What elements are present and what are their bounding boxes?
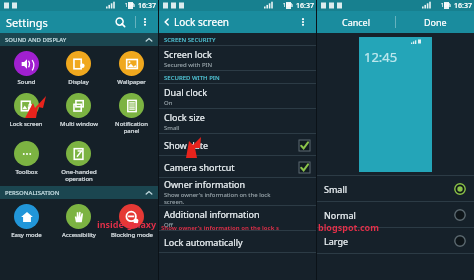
button[interactable]: Cancel — [317, 11, 395, 33]
other: Collapse — [145, 189, 153, 197]
button[interactable]: Show date — [159, 134, 316, 156]
other: Collapse — [145, 36, 153, 44]
staticText: Easy mode — [11, 231, 42, 239]
staticText: 16% — [441, 2, 451, 9]
button[interactable]: Dual clock — [159, 84, 316, 109]
button[interactable]: Notification panel — [105, 92, 158, 136]
staticText: Dual clock — [164, 86, 208, 98]
staticText: Large — [324, 235, 349, 247]
staticText: Show owner's information on the lock scr… — [164, 191, 271, 206]
staticText: inside-galaxy — [97, 218, 157, 230]
staticText: 16:37 — [454, 1, 472, 11]
staticText: Additional information — [164, 208, 260, 220]
staticText: Small — [164, 124, 180, 132]
staticText: Normal — [324, 209, 356, 221]
staticText: PERSONALISATION — [5, 189, 60, 197]
staticText: Display — [68, 78, 89, 86]
button[interactable]: Easy mode — [0, 203, 52, 240]
button[interactable]: More options — [295, 14, 311, 30]
staticText: Wallpaper — [117, 78, 146, 86]
button[interactable]: Additional information — [159, 206, 316, 231]
button[interactable]: Multi window — [52, 92, 105, 129]
staticText: Show date — [164, 139, 209, 151]
button[interactable]: Owner information — [159, 178, 316, 206]
staticText: One-handed operation — [61, 168, 97, 183]
staticText: Show owner's information on the lock s — [161, 224, 279, 232]
staticText: 16% — [125, 2, 135, 9]
button[interactable]: SOUND AND DISPLAY — [0, 33, 158, 46]
staticText: 16:37 — [296, 1, 314, 11]
other: Small option — [454, 183, 466, 195]
other: Large option — [454, 235, 466, 247]
staticText: Multi window — [60, 120, 98, 128]
staticText: Done — [424, 16, 447, 28]
staticText: 16% — [283, 2, 293, 9]
staticText: 12:45 — [364, 48, 398, 66]
button[interactable]: Search — [112, 14, 128, 30]
button[interactable]: Display — [52, 50, 105, 87]
staticText: Accessibility — [62, 231, 96, 239]
staticText: SCREEN SECURITY — [164, 36, 216, 44]
staticText: Toolbox — [15, 168, 38, 176]
staticText: Secured with PIN — [164, 61, 213, 69]
staticText: Cancel — [342, 16, 371, 28]
staticText: Camera shortcut — [164, 161, 235, 173]
other: Show date checkbox — [299, 140, 310, 151]
button[interactable]: Blocking mode — [105, 203, 158, 240]
staticText: Lock screen — [9, 120, 43, 128]
button[interactable]: Done — [396, 11, 474, 33]
button[interactable]: Lock automatically — [159, 231, 316, 253]
other: Camera shortcut checkbox — [299, 162, 310, 173]
staticText: Off — [164, 221, 173, 229]
staticText: Small — [324, 183, 348, 195]
button[interactable]: Wallpaper — [105, 50, 158, 87]
button[interactable]: Accessibility — [52, 203, 105, 240]
staticText: Screen lock — [164, 48, 212, 60]
staticText: Blocking mode — [111, 231, 153, 239]
button[interactable]: Screen lock — [159, 46, 316, 71]
button[interactable]: Back — [162, 15, 230, 29]
button[interactable]: More options — [137, 14, 153, 30]
staticText: blogspot.com — [318, 221, 379, 233]
staticText: Lock screen — [174, 15, 230, 29]
staticText: On — [164, 99, 173, 107]
button[interactable]: Lock screen — [0, 92, 52, 129]
staticText: SOUND AND DISPLAY — [5, 36, 67, 44]
staticText: Clock size — [164, 111, 205, 123]
staticText: 16:37 — [138, 1, 156, 11]
button[interactable]: Normal — [317, 202, 474, 228]
button[interactable]: Small — [317, 176, 474, 202]
button[interactable]: Toolbox — [0, 140, 52, 177]
button[interactable]: Sound — [0, 50, 52, 87]
other: Back — [162, 17, 172, 27]
staticText: Settings — [6, 15, 48, 30]
button[interactable]: Clock size — [159, 109, 316, 134]
other: Normal option — [454, 209, 466, 221]
button[interactable]: One-handed operation — [52, 140, 105, 184]
staticText: Sound — [17, 78, 36, 86]
staticText: Notification panel — [115, 120, 148, 135]
button[interactable]: Large — [317, 228, 474, 254]
staticText: Lock automatically — [164, 236, 243, 248]
button[interactable]: PERSONALISATION — [0, 186, 158, 199]
staticText: Owner information — [164, 178, 245, 190]
button[interactable]: Camera shortcut — [159, 156, 316, 178]
staticText: SECURED WITH PIN — [164, 74, 220, 82]
